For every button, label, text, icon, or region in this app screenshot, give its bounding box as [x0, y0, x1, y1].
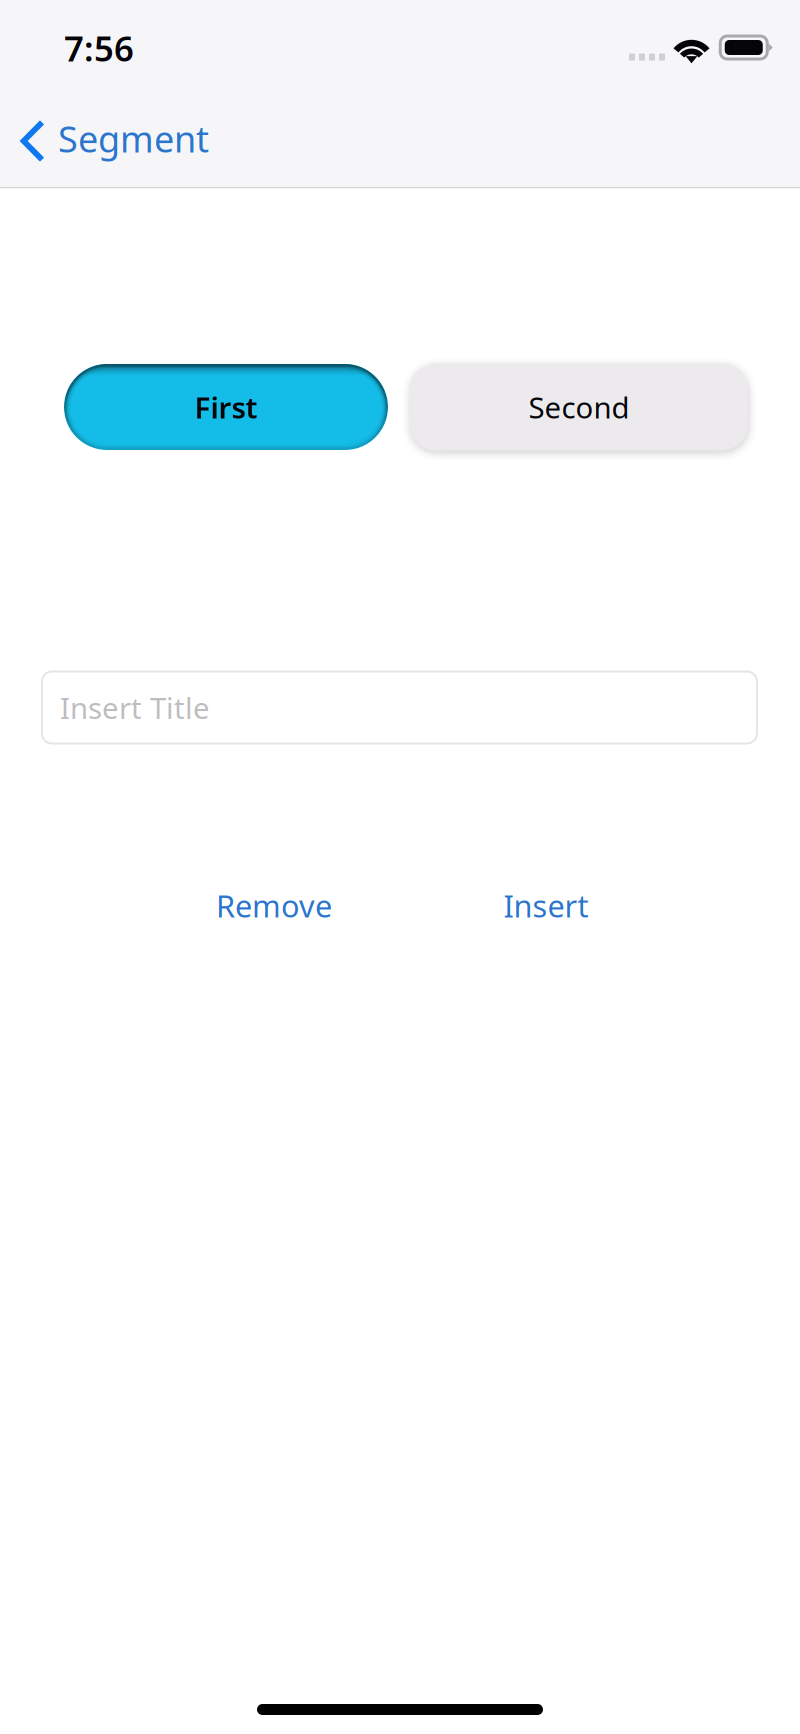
- button[interactable]: Back to Segment: [0, 104, 231, 179]
- staticText: Remove: [216, 885, 332, 926]
- button[interactable]: Insert Title: [42, 671, 757, 743]
- button[interactable]: Insert: [496, 878, 596, 932]
- staticText: 7:56: [64, 25, 134, 71]
- staticText: First: [194, 387, 257, 426]
- button[interactable]: First: [64, 364, 388, 450]
- staticText: Segment: [58, 115, 209, 162]
- button[interactable]: Remove: [204, 878, 344, 932]
- staticText: Insert: [503, 885, 588, 926]
- button[interactable]: Second: [410, 363, 748, 450]
- staticText: Second: [528, 387, 629, 426]
- staticText: Insert Title: [60, 688, 210, 727]
